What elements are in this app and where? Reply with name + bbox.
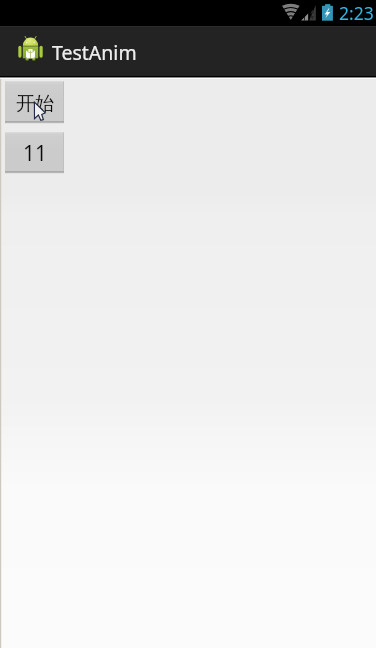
button[interactable]: 开始: [5, 81, 64, 124]
staticText: 2:23: [339, 1, 374, 25]
staticText: TestAnim: [52, 39, 137, 66]
button[interactable]: 11: [5, 132, 64, 174]
staticText: 开始: [16, 92, 54, 116]
staticText: 11: [23, 139, 48, 168]
